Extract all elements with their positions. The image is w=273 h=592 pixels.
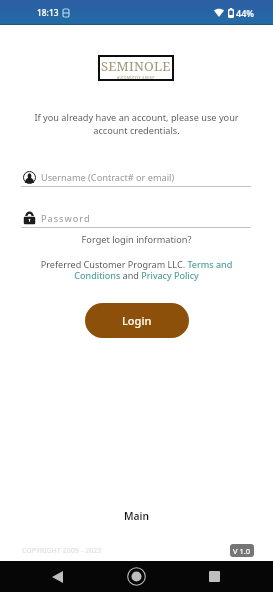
- staticText: If you already have an account, please u…: [31, 111, 242, 137]
- button[interactable]: Login: [85, 303, 189, 338]
- staticText: Username (Contract# or email): [41, 171, 175, 184]
- button[interactable]: Username (Contract# or email): [21, 171, 251, 187]
- staticText: 44%: [236, 7, 254, 19]
- staticText: Password: [41, 212, 91, 225]
- button[interactable]: Recent apps: [197, 561, 232, 592]
- button[interactable]: Main: [124, 509, 150, 523]
- staticText: V 1.0: [233, 546, 251, 556]
- staticText: Preferred Customer Program LLC. Terms an…: [40, 258, 233, 282]
- staticText: SEMINOLE: [101, 57, 171, 75]
- button[interactable]: Home: [119, 561, 154, 592]
- button[interactable]: V 1.0: [230, 544, 254, 557]
- button[interactable]: Forget login information?: [0, 233, 273, 246]
- staticText: Login: [122, 313, 152, 328]
- staticText: 18:13: [37, 7, 59, 18]
- staticText: AUTOMOTIVE GROUP: [117, 76, 155, 80]
- button[interactable]: Password: [21, 212, 251, 228]
- staticText: COPYRIGHT 2009 - 2023: [22, 546, 102, 555]
- button[interactable]: Back: [40, 561, 75, 592]
